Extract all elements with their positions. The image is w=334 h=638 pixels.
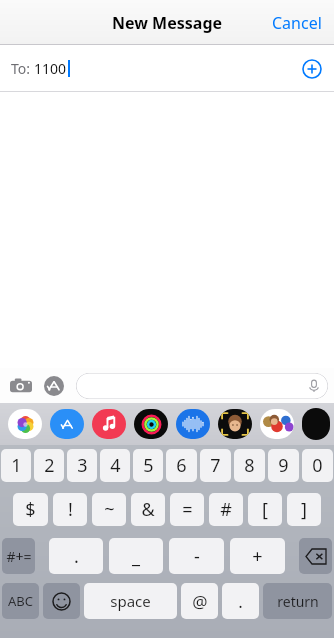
button[interactable]: To:	[0, 45, 334, 92]
button[interactable]: =	[170, 493, 204, 526]
button[interactable]: ~	[92, 493, 126, 526]
staticText: 9	[278, 453, 289, 478]
button[interactable]: #	[209, 493, 243, 526]
button[interactable]: 2	[34, 449, 64, 482]
button[interactable]: #+=	[2, 538, 35, 574]
staticText: #+=	[6, 547, 32, 566]
staticText: +	[252, 544, 263, 569]
button[interactable]: 1	[1, 449, 31, 482]
staticText: .	[74, 544, 79, 569]
staticText: _	[132, 544, 140, 569]
staticText: [	[262, 497, 268, 522]
button[interactable]: &	[131, 493, 165, 526]
button[interactable]: Cancel	[260, 2, 334, 44]
button[interactable]	[8, 408, 42, 440]
button[interactable]: Camera	[8, 373, 34, 399]
staticText: ]	[301, 497, 307, 522]
button[interactable]: space	[84, 583, 177, 619]
button[interactable]: $	[13, 493, 48, 526]
staticText: 1100	[34, 59, 67, 78]
button[interactable]	[218, 408, 252, 440]
staticText: New Message	[112, 12, 223, 34]
button[interactable]	[302, 408, 330, 440]
staticText: return	[277, 592, 319, 611]
button[interactable]: @	[181, 583, 218, 619]
staticText: space	[110, 591, 151, 611]
button[interactable]: 7	[200, 449, 231, 482]
button[interactable]: _	[109, 538, 163, 574]
staticText: Cancel	[272, 12, 322, 34]
staticText: 7	[210, 453, 221, 478]
button[interactable]	[50, 408, 84, 440]
button[interactable]	[134, 408, 168, 440]
staticText: 1	[11, 453, 22, 478]
button[interactable]: 4	[100, 449, 130, 482]
button[interactable]	[176, 408, 210, 440]
button[interactable]: Emoji	[43, 583, 80, 619]
staticText: -	[194, 544, 200, 569]
staticText: @	[192, 590, 208, 613]
button[interactable]: App Store	[42, 374, 66, 398]
staticText: 4	[110, 453, 121, 478]
button[interactable]: 8	[234, 449, 265, 482]
button[interactable]: 9	[268, 449, 299, 482]
staticText: 0	[312, 453, 323, 478]
button[interactable]: [	[248, 493, 282, 526]
button[interactable]: ABC	[2, 583, 39, 619]
staticText: 5	[143, 453, 154, 478]
staticText: 6	[176, 453, 187, 478]
button[interactable]	[260, 408, 294, 440]
staticText: ~	[104, 497, 115, 522]
staticText: To:	[11, 59, 34, 78]
button[interactable]	[76, 373, 328, 399]
button[interactable]: !	[53, 493, 87, 526]
button[interactable]: .	[49, 538, 103, 574]
button[interactable]: Delete	[299, 538, 332, 574]
staticText: .	[238, 590, 243, 613]
button[interactable]: .	[222, 583, 259, 619]
staticText: 8	[244, 453, 255, 478]
button[interactable]: return	[263, 583, 332, 619]
button[interactable]	[92, 408, 126, 440]
staticText: #	[220, 497, 232, 522]
staticText: !	[68, 497, 73, 522]
button[interactable]: +	[230, 538, 285, 574]
staticText: 2	[44, 453, 55, 478]
button[interactable]: ]	[287, 493, 321, 526]
button[interactable]: Add contact	[298, 55, 326, 83]
staticText: ABC	[8, 592, 33, 610]
button[interactable]: 3	[67, 449, 97, 482]
button[interactable]: 6	[166, 449, 197, 482]
button[interactable]: 0	[302, 449, 333, 482]
staticText: &	[141, 497, 155, 522]
button[interactable]: 5	[133, 449, 163, 482]
staticText: 3	[77, 453, 88, 478]
button[interactable]: -	[169, 538, 224, 574]
staticText: $	[25, 497, 36, 522]
staticText: =	[182, 497, 193, 522]
